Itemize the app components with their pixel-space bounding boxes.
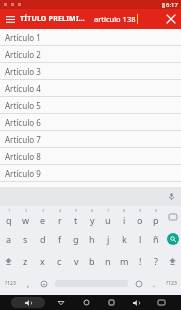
staticText: ! [139, 255, 142, 267]
button[interactable]: 8 [116, 206, 132, 228]
staticText: d [40, 233, 46, 245]
button[interactable]: Artículo 5 [0, 97, 181, 114]
button[interactable]: Shift [0, 250, 17, 272]
button[interactable]: 6 [84, 206, 100, 228]
staticText: k [122, 233, 127, 245]
staticText: q [6, 214, 12, 226]
button[interactable]: Switch keyboard [152, 296, 170, 309]
button[interactable]: Emoji [36, 272, 52, 295]
button[interactable]: g [68, 228, 84, 250]
staticText: i [123, 214, 126, 226]
staticText: r [58, 214, 62, 226]
staticText: . [153, 278, 156, 289]
staticText: o [137, 214, 143, 226]
staticText: g [73, 233, 79, 245]
staticText: Artículo 4 [5, 83, 41, 94]
staticText: s [23, 233, 28, 245]
button[interactable]: Artículo 2 [0, 46, 181, 63]
staticText: 0 [155, 208, 158, 213]
button[interactable]: Artículo 7 [0, 131, 181, 148]
staticText: h [89, 233, 95, 245]
button[interactable]: v [68, 250, 84, 272]
staticText: TÍTULO PRELIMI… [20, 14, 86, 24]
button[interactable]: ! [132, 250, 148, 272]
staticText: Artículo 7 [5, 134, 41, 145]
staticText: 2 [25, 208, 28, 213]
button[interactable]: ? [148, 250, 164, 272]
staticText: Artículo 6 [5, 117, 41, 128]
button[interactable]: n [100, 250, 116, 272]
button[interactable]: Recents [102, 296, 120, 309]
staticText: ñ [153, 233, 159, 245]
staticText: a [6, 233, 12, 245]
staticText: Artículo 8 [5, 151, 41, 162]
button[interactable]: Space [52, 272, 131, 295]
staticText: 8 [123, 208, 126, 213]
button[interactable]: x [34, 250, 51, 272]
staticText: t [74, 214, 78, 226]
button[interactable]: m [116, 250, 132, 272]
button[interactable]: . [147, 272, 161, 295]
button[interactable]: Artículo 9 [0, 165, 181, 182]
button[interactable]: c [51, 250, 68, 272]
button[interactable]: z [17, 250, 34, 272]
staticText: c [57, 255, 62, 267]
button[interactable]: Shift [164, 250, 181, 272]
button[interactable]: Artículo 6 [0, 114, 181, 131]
button[interactable]: 2 [17, 206, 34, 228]
button[interactable]: s [17, 228, 34, 250]
button[interactable]: Search [164, 228, 181, 250]
button[interactable]: 7 [100, 206, 116, 228]
staticText: x [40, 255, 45, 267]
button[interactable]: Home [77, 296, 95, 309]
button[interactable]: 3 [34, 206, 51, 228]
button[interactable]: k [116, 228, 132, 250]
button[interactable]: 9 [132, 206, 148, 228]
staticText: p [153, 214, 159, 226]
staticText: u [105, 214, 111, 226]
button[interactable]: f [51, 228, 68, 250]
button[interactable]: Backspace [164, 206, 181, 228]
button[interactable]: ?123 [161, 272, 181, 295]
staticText: Artículo 3 [5, 66, 41, 77]
staticText: 6:17 [166, 1, 178, 9]
button[interactable]: Voice input [162, 187, 181, 206]
button[interactable]: Artículo 4 [0, 80, 181, 97]
button[interactable]: j [100, 228, 116, 250]
button[interactable]: d [34, 228, 51, 250]
staticText: 6 [91, 208, 94, 213]
staticText: z [23, 255, 28, 267]
staticText: y [90, 214, 95, 226]
button[interactable]: l [132, 228, 148, 250]
button[interactable]: Volume up [127, 296, 145, 309]
button[interactable]: 1 [0, 206, 17, 228]
button[interactable]: a [0, 228, 17, 250]
staticText: v [74, 255, 79, 267]
button[interactable]: ?123 [0, 272, 20, 295]
button[interactable]: 4 [51, 206, 68, 228]
staticText: Artículo 1 [5, 32, 41, 43]
button[interactable]: Artículo 3 [0, 63, 181, 80]
staticText: 5 [75, 208, 78, 213]
staticText: m [120, 255, 129, 267]
staticText: w [22, 214, 30, 226]
staticText: ? [154, 255, 158, 267]
button[interactable]: 0 [148, 206, 164, 228]
button[interactable]: ñ [148, 228, 164, 250]
button[interactable]: Close search [161, 9, 181, 29]
button[interactable]: Back [52, 296, 70, 309]
staticText: 4 [59, 208, 62, 213]
button[interactable]: Artículo 1 [0, 29, 181, 46]
staticText: Artículo 2 [5, 49, 41, 60]
staticText: Artículo 5 [5, 100, 41, 111]
button[interactable]: Volume [11, 297, 45, 308]
button[interactable]: 5 [68, 206, 84, 228]
button[interactable]: b [84, 250, 100, 272]
button[interactable]: Menu [0, 9, 20, 29]
button[interactable]: h [84, 228, 100, 250]
staticText: ?123 [166, 280, 177, 287]
button[interactable]: Artículo 8 [0, 148, 181, 165]
button[interactable]: Emoji keyboard [131, 272, 147, 295]
staticText: , [27, 278, 30, 289]
button[interactable]: , [20, 272, 36, 295]
